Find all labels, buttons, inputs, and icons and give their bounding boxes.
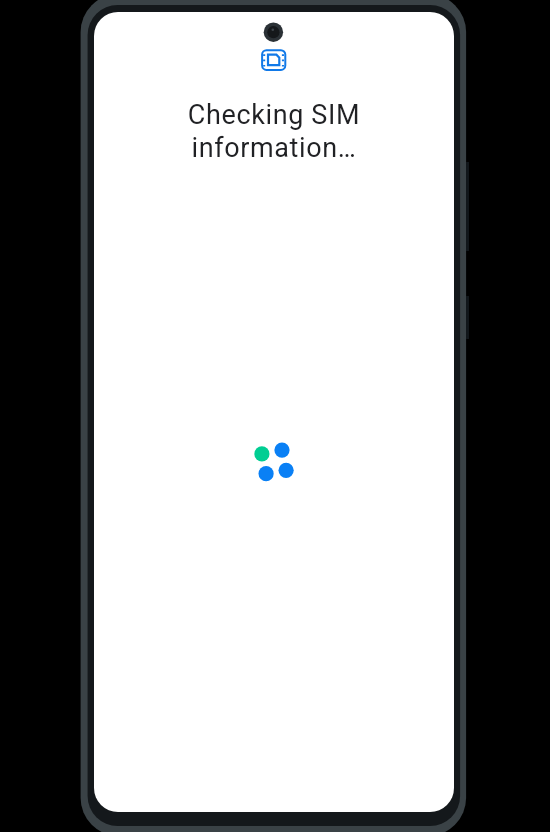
other: SIM card — [261, 49, 287, 72]
other: Loading — [249, 430, 295, 476]
staticText: Checking SIM information… — [94, 99, 454, 812]
